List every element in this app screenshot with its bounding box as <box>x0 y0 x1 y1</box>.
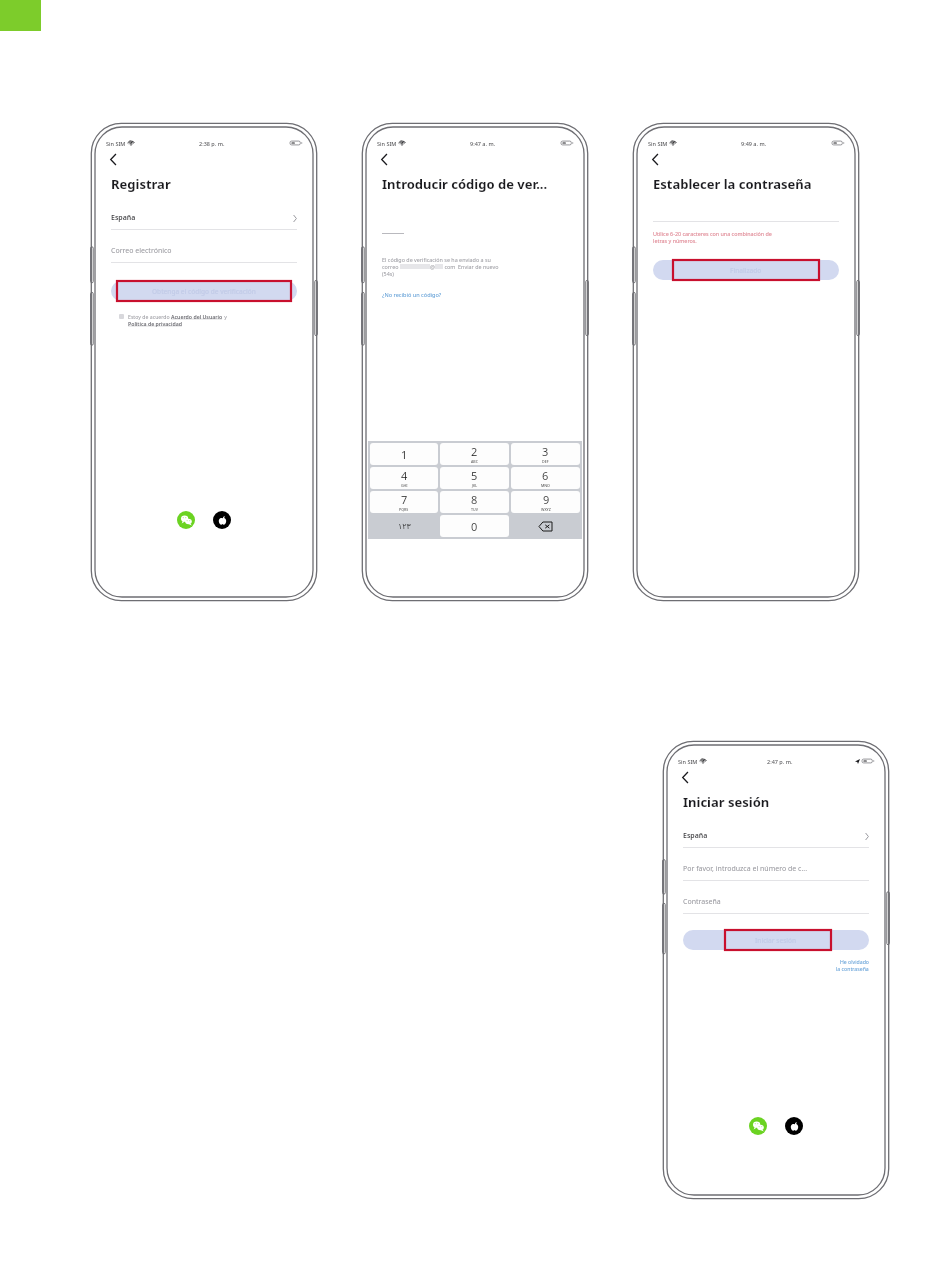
button[interactable]: Iniciar sesión <box>683 930 869 950</box>
staticText: Finalizado <box>730 266 762 275</box>
button[interactable]: 0 <box>440 515 509 537</box>
staticText: DEF <box>542 459 549 464</box>
staticText: Sin SIM <box>106 140 126 147</box>
staticText: GHI <box>401 483 408 488</box>
staticText: JKL <box>472 483 478 488</box>
staticText: Iniciar sesión <box>683 793 869 811</box>
staticText: Obtenga el código de verificación <box>152 287 256 296</box>
staticText: 5 <box>471 468 478 483</box>
button[interactable]: 7 <box>370 491 438 513</box>
staticText: la contraseña <box>836 965 869 972</box>
button[interactable]: Back <box>105 151 121 167</box>
button[interactable]: Finalizado <box>653 260 839 280</box>
staticText: 3 <box>542 444 549 459</box>
button[interactable]: Back <box>376 151 392 167</box>
staticText: WXYZ <box>541 507 551 512</box>
button[interactable]: ¿No recibió un código? <box>382 291 442 299</box>
button[interactable]: Agree checkbox <box>119 314 124 319</box>
button[interactable]: España <box>111 207 297 230</box>
staticText: Por favor, introduzca el número de c... <box>683 864 869 874</box>
staticText: 1 <box>401 447 408 462</box>
button[interactable]: 5 <box>440 467 509 489</box>
staticText: España <box>683 831 865 841</box>
staticText: Iniciar sesión <box>755 936 797 945</box>
staticText: Establecer la contraseña <box>653 175 839 193</box>
button[interactable]: He olvidado <box>669 958 869 972</box>
staticText: Estoy de acuerdo <box>128 313 171 320</box>
button[interactable]: ١٢٣ <box>370 515 438 537</box>
button[interactable]: España <box>683 825 869 848</box>
button[interactable]: 4 <box>370 467 438 489</box>
staticText: correo <box>382 263 400 270</box>
staticText: Sin SIM <box>648 140 668 147</box>
button[interactable]: Apple login <box>213 511 231 529</box>
button[interactable]: Back <box>647 151 663 167</box>
button[interactable]: Política de privacidad <box>128 320 182 327</box>
button[interactable]: WeChat login <box>177 511 195 529</box>
staticText: MNO <box>541 483 550 488</box>
button[interactable]: Back <box>677 769 693 785</box>
staticText: Contraseña <box>683 897 869 907</box>
staticText: ١٢٣ <box>398 522 411 531</box>
button[interactable]: 1 <box>370 443 438 465</box>
button[interactable]: Obtenga el código de verificación <box>111 281 297 301</box>
button[interactable]: Delete <box>511 515 580 537</box>
staticText: PQRS <box>399 507 409 512</box>
staticText: @ <box>430 263 435 270</box>
staticText: Correo electrónico <box>111 246 297 256</box>
button[interactable]: Contraseña <box>683 891 869 914</box>
button[interactable]: WeChat login <box>749 1117 767 1135</box>
staticText: Sin SIM <box>678 758 698 765</box>
staticText: 6 <box>542 468 549 483</box>
staticText: (54s) <box>382 270 394 277</box>
staticText: 0 <box>471 519 478 534</box>
staticText: He olvidado <box>840 958 869 965</box>
button[interactable]: 8 <box>440 491 509 513</box>
staticText: 7 <box>401 492 408 507</box>
button[interactable]: Correo electrónico <box>111 240 297 263</box>
staticText: Introducir código de ver... <box>382 175 568 193</box>
staticText: Sin SIM <box>377 140 397 147</box>
button[interactable]: 2 <box>440 443 509 465</box>
staticText: 9 <box>543 492 550 507</box>
staticText: ABC <box>471 459 478 464</box>
staticText: letras y números. <box>653 237 697 244</box>
staticText: 9:47 a. m. <box>470 140 496 147</box>
staticText: El código de verificación se ha enviado … <box>382 256 491 263</box>
staticText: TUV <box>471 507 478 512</box>
button[interactable]: 6 <box>511 467 580 489</box>
button[interactable]: Apple login <box>785 1117 803 1135</box>
staticText: com Enviar de nuevo <box>443 263 499 270</box>
staticText: España <box>111 213 293 223</box>
staticText: 9:49 a. m. <box>741 140 767 147</box>
staticText: y <box>223 313 227 320</box>
button[interactable]: Acuerdo del Usuario <box>171 313 223 320</box>
staticText: 2 <box>471 444 478 459</box>
staticText: Registrar <box>111 175 297 193</box>
staticText: 2:38 p. m. <box>199 140 225 147</box>
button[interactable]: Por favor, introduzca el número de c... <box>683 858 869 881</box>
staticText: 8 <box>471 492 478 507</box>
button[interactable]: 3 <box>511 443 580 465</box>
button[interactable]: 9 <box>511 491 580 513</box>
staticText: 4 <box>401 468 408 483</box>
staticText: 2:47 p. m. <box>767 758 793 765</box>
staticText: Utilice 6-20 caracteres con una combinac… <box>653 230 772 237</box>
